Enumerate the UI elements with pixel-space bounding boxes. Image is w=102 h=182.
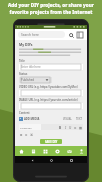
button[interactable]: Menu <box>76 31 84 39</box>
staticText: VIDEO URL (e.g. https://youtube.com/XyMc… <box>19 85 78 89</box>
staticText: Search here <box>21 33 39 37</box>
button[interactable]: Format ▦ <box>78 125 83 130</box>
button[interactable]: Enter title here <box>19 64 83 70</box>
button[interactable]: Messages <box>63 146 75 156</box>
button[interactable] <box>19 103 83 109</box>
button[interactable]: Home <box>15 146 27 156</box>
staticText: SAVE DIY <box>45 140 58 144</box>
button[interactable]: Format ≡ <box>73 125 78 130</box>
button[interactable] <box>19 90 83 96</box>
staticText: ≣ <box>20 133 23 137</box>
staticText: Published <box>21 78 34 82</box>
button[interactable]: Settings <box>51 146 63 156</box>
button[interactable]: Format U <box>68 125 73 130</box>
button[interactable]: Format ≣ <box>19 132 24 137</box>
button[interactable]: Projects <box>27 146 39 156</box>
button[interactable]: SAVE DIY <box>40 139 62 144</box>
staticText: B <box>59 126 62 130</box>
button[interactable]: Back <box>29 157 35 163</box>
staticText: Status <box>19 72 28 76</box>
staticText: ▦ <box>79 126 83 130</box>
button[interactable]: Published <box>19 77 52 83</box>
staticText: I <box>65 126 67 130</box>
button[interactable]: Browse <box>39 146 51 156</box>
staticText: ⌘ <box>30 133 34 137</box>
button[interactable]: Home <box>48 157 54 163</box>
button[interactable]: Format I <box>63 125 68 130</box>
button[interactable]: Format B <box>58 125 63 130</box>
staticText: Add your DIY projects, or share your <box>3 2 99 8</box>
button[interactable]: Recents <box>68 157 74 163</box>
button[interactable]: Profile <box>75 146 87 156</box>
staticText: favorite projects from the Internet <box>3 9 99 15</box>
button[interactable]: Format ≡ <box>24 132 29 137</box>
button[interactable]: Search here <box>18 31 65 38</box>
button[interactable]: Paragraph <box>19 124 41 130</box>
staticText: ADD MEDIA <box>24 117 40 121</box>
staticText: My DIYs <box>19 42 33 47</box>
staticText: U <box>69 126 72 130</box>
staticText: Title <box>19 59 25 63</box>
button[interactable]: ADD MEDIA <box>19 116 40 122</box>
button[interactable]: Format ⌘ <box>29 132 34 137</box>
staticText: Content <box>19 111 30 115</box>
staticText: Paragraph <box>20 126 32 129</box>
button[interactable]: Search <box>67 31 75 39</box>
staticText: ≡ <box>25 133 28 137</box>
staticText: Enter title here <box>21 65 41 69</box>
staticText: ≡ <box>74 126 77 130</box>
staticText: IMAGE URL (e.g. https://yoursite.com/art… <box>19 98 78 102</box>
button[interactable]: TEXT <box>75 117 83 121</box>
button[interactable]: VISUAL <box>62 117 73 121</box>
